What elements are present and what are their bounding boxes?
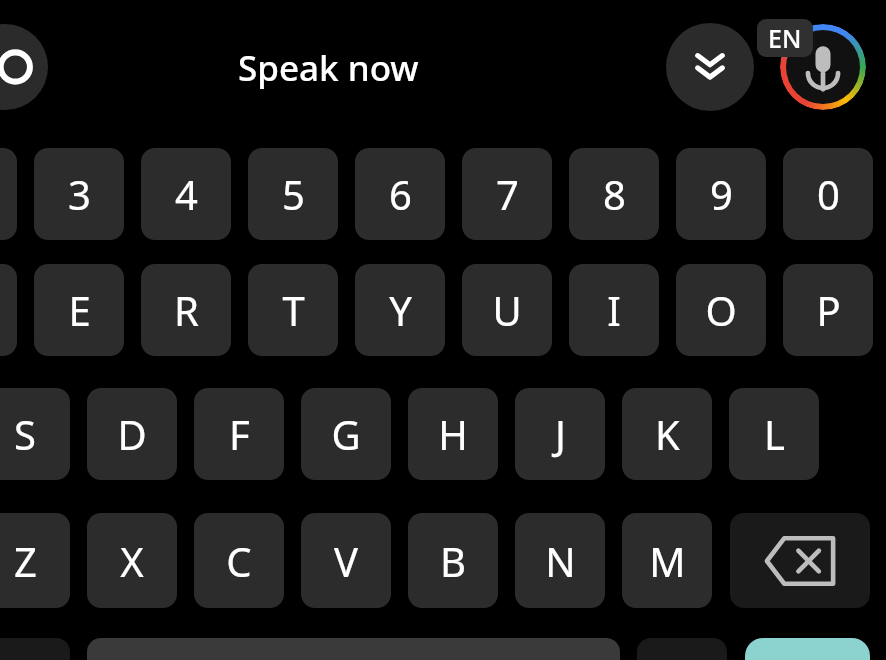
button[interactable]: R xyxy=(141,264,231,356)
staticText: Z xyxy=(14,534,37,588)
staticText: 0 xyxy=(817,167,840,221)
staticText: 4 xyxy=(175,167,198,221)
staticText: E xyxy=(68,283,91,337)
button[interactable]: S xyxy=(0,388,70,480)
staticText: K xyxy=(655,407,680,461)
button[interactable]: 6 xyxy=(355,148,445,240)
staticText: B xyxy=(440,534,466,588)
button[interactable]: N xyxy=(515,513,605,608)
button[interactable]: Back xyxy=(0,24,48,110)
staticText: C xyxy=(226,534,252,588)
staticText: X xyxy=(120,534,144,588)
button[interactable]: 8 xyxy=(569,148,659,240)
staticText: 8 xyxy=(603,167,626,221)
staticText: F xyxy=(229,407,250,461)
button[interactable]: 9 xyxy=(676,148,766,240)
staticText: 6 xyxy=(389,167,412,221)
staticText: G xyxy=(331,407,361,461)
button[interactable]: Backspace xyxy=(730,513,870,608)
staticText: I xyxy=(607,283,621,337)
button[interactable]: 3 xyxy=(34,148,124,240)
staticText: S xyxy=(14,407,36,461)
button[interactable]: Voice input xyxy=(780,24,866,110)
button[interactable]: 0 xyxy=(783,148,873,240)
staticText: EN xyxy=(768,21,802,55)
button[interactable]: E xyxy=(34,264,124,356)
staticText: P xyxy=(816,283,841,337)
button[interactable]: I xyxy=(569,264,659,356)
staticText: V xyxy=(334,534,358,588)
button[interactable]: Emoji xyxy=(0,638,70,660)
staticText: J xyxy=(555,407,566,461)
staticText: M xyxy=(649,534,686,588)
staticText: 3 xyxy=(68,167,91,221)
button[interactable]: Hide keyboard xyxy=(666,23,754,111)
button[interactable]: Z xyxy=(0,513,70,608)
button[interactable]: Period xyxy=(637,638,727,660)
button[interactable]: V xyxy=(301,513,391,608)
staticText: R xyxy=(174,283,199,337)
button[interactable]: J xyxy=(515,388,605,480)
button[interactable]: 5 xyxy=(248,148,338,240)
button[interactable]: X xyxy=(87,513,177,608)
button[interactable]: M xyxy=(622,513,712,608)
staticText: Speak now xyxy=(238,44,419,92)
button[interactable]: D xyxy=(87,388,177,480)
button[interactable]: L xyxy=(729,388,819,480)
staticText: D xyxy=(117,407,147,461)
staticText: T xyxy=(282,283,305,337)
staticText: 5 xyxy=(282,167,305,221)
button[interactable]: G xyxy=(301,388,391,480)
staticText: U xyxy=(492,283,522,337)
button[interactable]: 4 xyxy=(141,148,231,240)
staticText: N xyxy=(545,534,576,588)
staticText: 7 xyxy=(496,167,519,221)
button[interactable]: Y xyxy=(355,264,445,356)
button[interactable]: T xyxy=(248,264,338,356)
button[interactable]: B xyxy=(408,513,498,608)
button[interactable]: K xyxy=(622,388,712,480)
button[interactable]: P xyxy=(783,264,873,356)
button[interactable]: W xyxy=(0,264,17,356)
button[interactable]: EN xyxy=(757,19,813,57)
staticText: L xyxy=(764,407,785,461)
button[interactable]: 7 xyxy=(462,148,552,240)
staticText: O xyxy=(705,283,737,337)
button[interactable]: Space xyxy=(87,638,620,660)
button[interactable]: H xyxy=(408,388,498,480)
button[interactable]: U xyxy=(462,264,552,356)
staticText: 9 xyxy=(710,167,733,221)
button[interactable]: O xyxy=(676,264,766,356)
button[interactable]: 2 xyxy=(0,148,17,240)
staticText: H xyxy=(438,407,468,461)
button[interactable]: C xyxy=(194,513,284,608)
button[interactable]: F xyxy=(194,388,284,480)
staticText: Y xyxy=(389,283,412,337)
button[interactable]: Enter xyxy=(745,638,870,660)
